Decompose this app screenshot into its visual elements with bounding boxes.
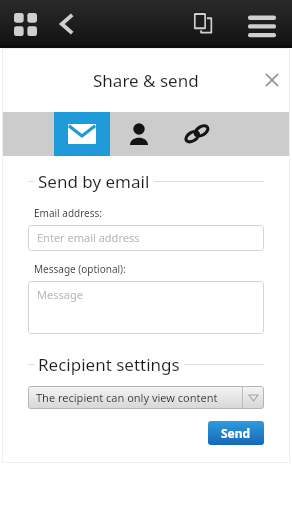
staticText: Send xyxy=(221,425,251,441)
button[interactable]: Share with people xyxy=(110,112,168,156)
button[interactable]: Tabs xyxy=(185,4,225,44)
button[interactable]: Send xyxy=(208,421,264,445)
button[interactable]: The recipient can only view content xyxy=(28,386,264,409)
staticText: Share & send xyxy=(93,69,199,92)
staticText: The recipient can only view content xyxy=(36,390,242,405)
button[interactable]: Message xyxy=(28,281,264,334)
button[interactable]: Back xyxy=(47,4,87,44)
button[interactable]: Enter email address xyxy=(28,225,264,251)
staticText: Enter email address xyxy=(37,230,140,245)
button[interactable]: Menu xyxy=(239,1,285,47)
staticText: Message xyxy=(37,287,83,302)
staticText: Message (optional): xyxy=(34,262,126,276)
staticText: Recipient settings xyxy=(38,353,180,376)
button[interactable]: Get link xyxy=(168,112,226,156)
button[interactable]: Send by email xyxy=(54,112,110,156)
staticText: Email address: xyxy=(34,206,103,220)
staticText: Send by email xyxy=(38,170,150,193)
button[interactable]: Close xyxy=(254,62,290,98)
button[interactable]: Apps xyxy=(5,4,45,44)
